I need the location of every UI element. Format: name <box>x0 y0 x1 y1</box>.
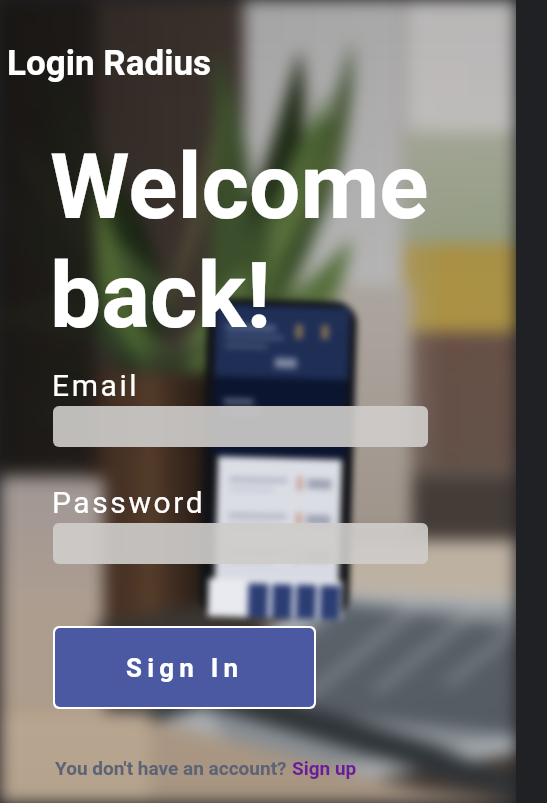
staticText: You don't have an account? <box>55 757 292 779</box>
staticText: Email <box>52 368 140 403</box>
staticText: Sign In <box>126 653 244 683</box>
button[interactable] <box>53 523 428 564</box>
button[interactable] <box>53 406 428 447</box>
staticText: Login Radius <box>7 43 212 84</box>
button[interactable]: Sign up <box>292 757 357 779</box>
button[interactable]: Sign In <box>55 628 314 707</box>
staticText: Welcome back! <box>50 134 429 349</box>
staticText: Password <box>52 485 206 520</box>
